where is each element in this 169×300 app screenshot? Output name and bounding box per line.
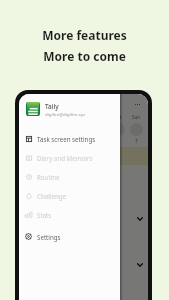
staticText: Routine [37, 173, 60, 181]
button[interactable]: Settings [19, 227, 120, 246]
staticText: 1 [29, 138, 32, 144]
staticText: Diary and Memoirs [37, 154, 93, 162]
staticText: 3 [63, 138, 66, 144]
staticText: Stats [37, 211, 52, 219]
staticText: Sun [132, 114, 141, 120]
staticText: 4 [81, 138, 84, 144]
staticText: Tue [44, 114, 52, 120]
button[interactable]: Routine [19, 167, 120, 186]
staticText: digifire@digifire.xyz [45, 111, 85, 117]
button[interactable]: Task screen settings [19, 129, 120, 148]
staticText: 7 [135, 138, 138, 144]
staticText: Sat [115, 114, 122, 120]
button[interactable]: Expand [137, 262, 143, 268]
button[interactable]: Diary and Memoirs [19, 148, 120, 167]
button[interactable]: Stats [19, 205, 120, 224]
staticText: Mon [26, 114, 36, 120]
staticText: 2 [46, 138, 49, 144]
button[interactable]: Taily [19, 100, 120, 118]
staticText: Task screen settings [37, 135, 96, 143]
staticText: Wed [60, 114, 70, 120]
staticText: Settings [37, 233, 61, 241]
staticText: More features [42, 27, 127, 43]
staticText: Challenge [37, 192, 67, 200]
staticText: Thu [78, 114, 87, 120]
staticText: Taily [45, 102, 59, 111]
button[interactable]: Taily [19, 94, 120, 300]
button[interactable]: Expand [137, 216, 143, 222]
button[interactable]: Challenge [19, 186, 120, 205]
staticText: More to come [43, 48, 126, 64]
